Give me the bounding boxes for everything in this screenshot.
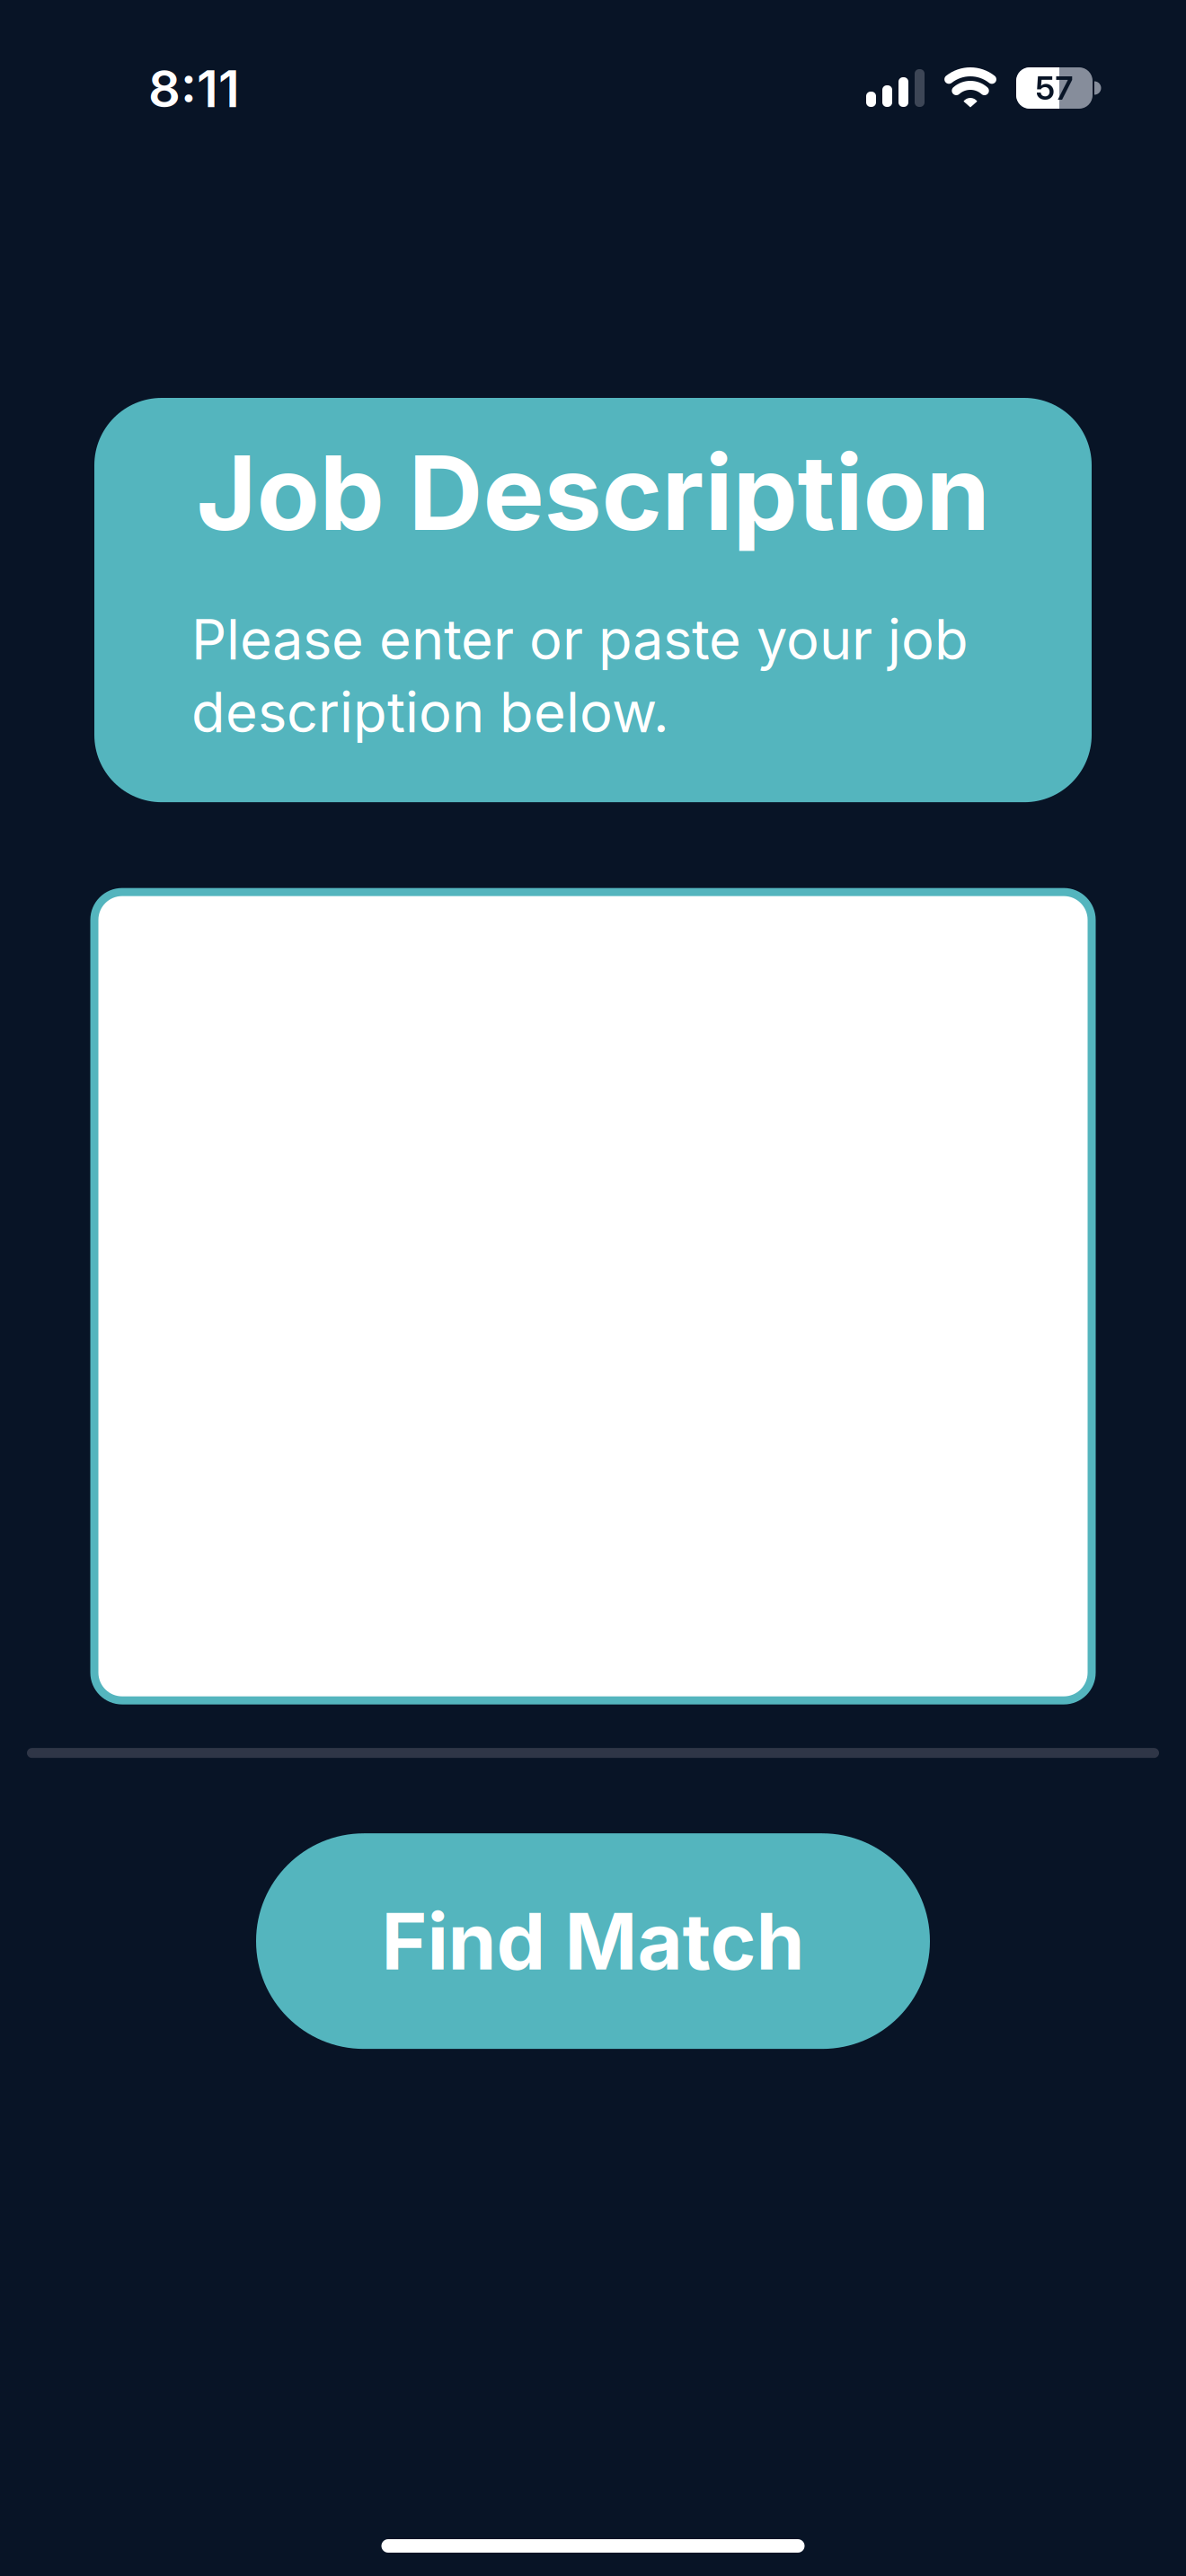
staticText: Job Description — [196, 430, 990, 555]
button[interactable]: Find Match — [256, 1833, 930, 2049]
staticText: Find Match — [381, 1894, 805, 1988]
button[interactable]: Job description text field — [0, 892, 1186, 1700]
staticText: Please enter or paste your job descripti… — [191, 606, 969, 746]
staticText: 8:11 — [148, 58, 240, 119]
staticText: 57 — [1036, 68, 1073, 108]
